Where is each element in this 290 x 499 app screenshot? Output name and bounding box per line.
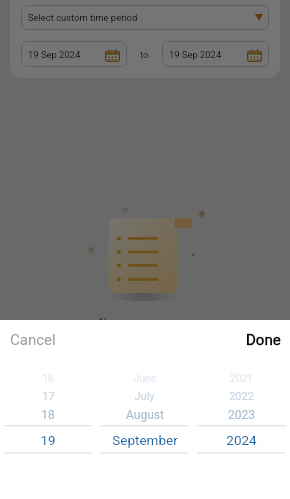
other: Pick date	[247, 49, 262, 63]
staticText: 2021	[230, 373, 253, 385]
button[interactable]: 19 Sep 2024	[21, 41, 127, 67]
staticText: June	[134, 373, 156, 385]
staticText: 2024	[226, 432, 257, 448]
button[interactable]: August	[96, 404, 193, 426]
button[interactable]: 2024	[193, 428, 290, 452]
button[interactable]: 19	[0, 428, 96, 452]
button[interactable]: 16	[0, 370, 96, 388]
staticText: 17	[42, 390, 55, 403]
staticText: Cancel	[10, 331, 56, 349]
button[interactable]: 17	[0, 386, 96, 406]
button[interactable]: June	[96, 370, 193, 388]
staticText: 2023	[228, 408, 255, 422]
staticText: 2022	[229, 390, 254, 403]
button[interactable]: 2023	[193, 404, 290, 426]
staticText: 19 Sep 2024	[28, 49, 81, 60]
button[interactable]: Done	[236, 326, 290, 354]
staticText: August	[126, 408, 164, 422]
staticText: 18	[41, 408, 55, 422]
staticText: September	[112, 432, 178, 448]
button[interactable]: 19 Sep 2024	[162, 41, 269, 67]
button[interactable]: Cancel	[0, 326, 66, 354]
staticText: 16	[42, 373, 54, 385]
button[interactable]: Select custom time period	[21, 5, 269, 30]
staticText: 19	[40, 432, 56, 448]
other: Pick date	[105, 49, 120, 63]
button[interactable]: 2021	[193, 370, 290, 388]
staticText: to	[140, 49, 149, 60]
button[interactable]: 2022	[193, 386, 290, 406]
staticText: 19 Sep 2024	[169, 49, 222, 60]
staticText: Select custom time period	[28, 12, 138, 23]
staticText: No Transactions	[99, 316, 173, 340]
button[interactable]: September	[96, 428, 193, 452]
button[interactable]: July	[96, 386, 193, 406]
staticText: July	[134, 390, 155, 403]
staticText: Done	[246, 331, 281, 349]
button[interactable]: 18	[0, 404, 96, 426]
